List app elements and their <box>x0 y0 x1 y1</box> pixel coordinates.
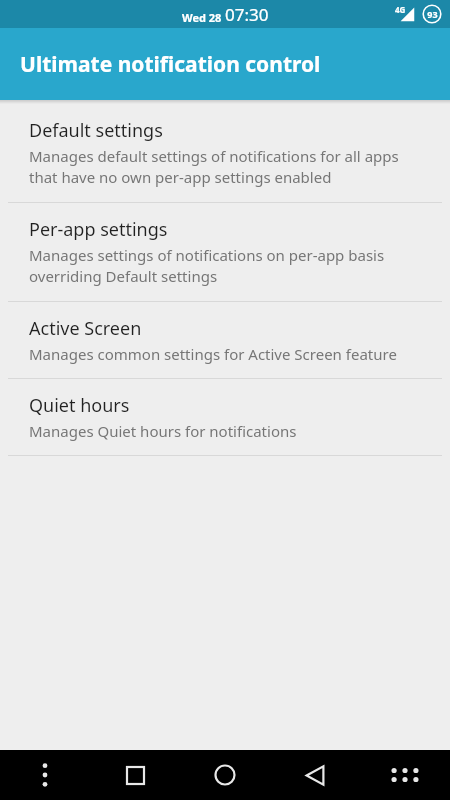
button[interactable]: Home <box>180 750 270 800</box>
button[interactable]: Default settings <box>0 104 450 202</box>
staticText: Manages default settings of notification… <box>29 146 414 188</box>
button[interactable]: Menu <box>0 750 90 800</box>
staticText: Default settings <box>29 118 163 143</box>
staticText: Ultimate notification control <box>20 50 321 79</box>
button[interactable]: Back <box>270 750 360 800</box>
staticText: 4G <box>395 4 406 15</box>
button[interactable]: Apps <box>360 750 450 800</box>
staticText: Per-app settings <box>29 217 168 242</box>
staticText: Active Screen <box>29 316 142 341</box>
staticText: 93 <box>427 8 438 20</box>
button[interactable]: Per-app settings <box>0 203 450 301</box>
button[interactable]: Active Screen <box>0 302 450 378</box>
button[interactable]: Recents <box>90 750 180 800</box>
staticText: Manages settings of notifications on per… <box>29 245 414 287</box>
staticText: Manages Quiet hours for notifications <box>29 421 297 441</box>
button[interactable]: Quiet hours <box>0 379 450 455</box>
staticText: 07:30 <box>225 3 269 26</box>
staticText: Manages common settings for Active Scree… <box>29 344 397 364</box>
staticText: Quiet hours <box>29 393 130 418</box>
staticText: Wed 28 <box>182 10 222 25</box>
